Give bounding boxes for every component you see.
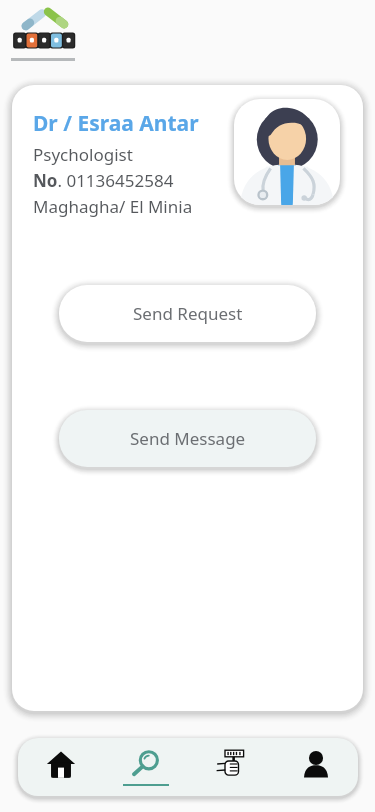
staticText: Dr / Esraa Antar (33, 109, 199, 138)
button[interactable]: Search (103, 738, 188, 796)
button[interactable]: Home (18, 738, 103, 796)
staticText: Send Request (133, 302, 243, 325)
staticText: Maghagha/ El Minia (33, 195, 193, 218)
staticText: Send Message (130, 427, 246, 450)
button[interactable]: Help (188, 738, 273, 796)
staticText: Psychologist (33, 143, 133, 166)
button[interactable]: Send Message (59, 410, 316, 467)
button[interactable]: Profile (273, 738, 358, 796)
button[interactable]: Send Request (59, 285, 316, 342)
staticText: No. 01136452584 (33, 169, 174, 192)
